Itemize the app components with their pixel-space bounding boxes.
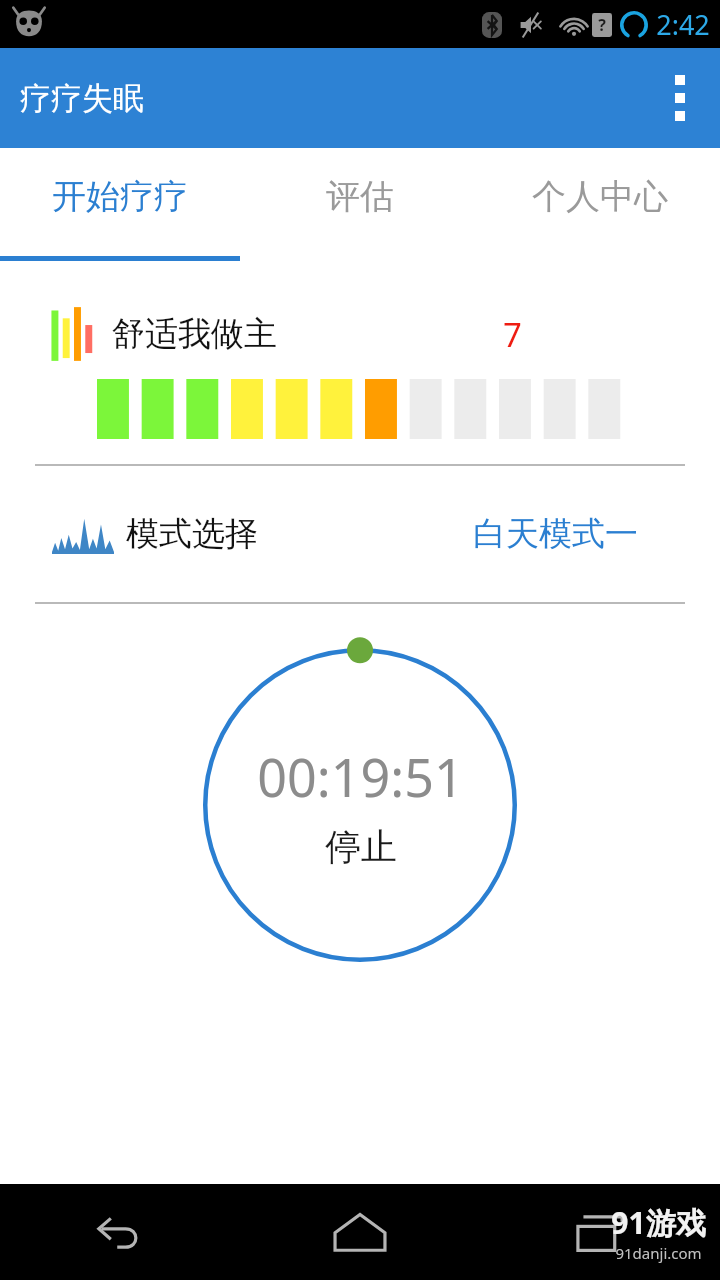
staticText: 白天模式一 xyxy=(473,513,638,555)
button[interactable]: More options xyxy=(652,70,708,126)
staticText: 疗疗失眠 xyxy=(20,79,144,118)
staticText: 个人中心 xyxy=(532,175,668,218)
staticText: ? xyxy=(598,14,606,36)
button[interactable]: 个人中心 xyxy=(480,148,720,261)
button[interactable] xyxy=(0,379,720,439)
staticText: 评估 xyxy=(326,175,394,218)
staticText: 模式选择 xyxy=(126,513,258,555)
button[interactable]: 00:19:51 xyxy=(195,640,525,970)
button[interactable]: 开始疗疗 xyxy=(0,148,240,261)
button[interactable]: Back xyxy=(0,1184,240,1280)
staticText: 91danji.com xyxy=(615,1243,702,1263)
staticText: 舒适我做主 xyxy=(112,313,277,355)
staticText: 开始疗疗 xyxy=(52,175,188,218)
staticText: 00:19:51 xyxy=(257,741,464,812)
staticText: 2:42 xyxy=(656,6,710,43)
button[interactable]: 模式选择 xyxy=(0,504,720,564)
staticText: 7 xyxy=(503,312,522,357)
button[interactable]: 评估 xyxy=(240,148,480,261)
button[interactable]: 舒适我做主 xyxy=(0,303,720,365)
staticText: 停止 xyxy=(325,824,397,869)
button[interactable]: Recent apps xyxy=(480,1184,720,1280)
staticText: 91游戏 xyxy=(611,1202,706,1243)
button[interactable]: Home xyxy=(240,1184,480,1280)
